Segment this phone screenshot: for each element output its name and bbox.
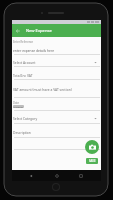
staticText: Total Inc VAT (13, 73, 33, 77)
button[interactable]: SAVE (86, 158, 98, 164)
button[interactable]: VAT amount (must have a VAT section) (13, 84, 97, 94)
button[interactable]: Home (52, 171, 62, 181)
staticText: Date (13, 101, 19, 105)
button[interactable]: Description (13, 127, 97, 137)
staticText: New Expense (26, 28, 52, 34)
staticText: Select Account (13, 60, 94, 64)
staticText: Select Category (13, 116, 94, 120)
staticText: Description (13, 130, 31, 134)
button[interactable]: Attach receipt photo (85, 140, 99, 154)
staticText: Enter Reference (13, 40, 34, 44)
button[interactable]: Select Category (13, 113, 97, 123)
button[interactable]: Back (12, 24, 24, 37)
button[interactable]: Back (26, 171, 36, 181)
staticText: 07/08/2019 (13, 105, 24, 108)
button[interactable]: 07/08/2019 (13, 105, 24, 108)
button[interactable]: Select Account (13, 57, 97, 67)
button[interactable]: enter expense details here (13, 45, 97, 55)
button[interactable]: Total Inc VAT (13, 70, 97, 80)
staticText: VAT amount (must have a VAT section) (13, 87, 72, 91)
button[interactable]: Recent apps (76, 171, 86, 181)
staticText: SAVE (89, 159, 96, 163)
staticText: enter expense details here (13, 48, 55, 52)
